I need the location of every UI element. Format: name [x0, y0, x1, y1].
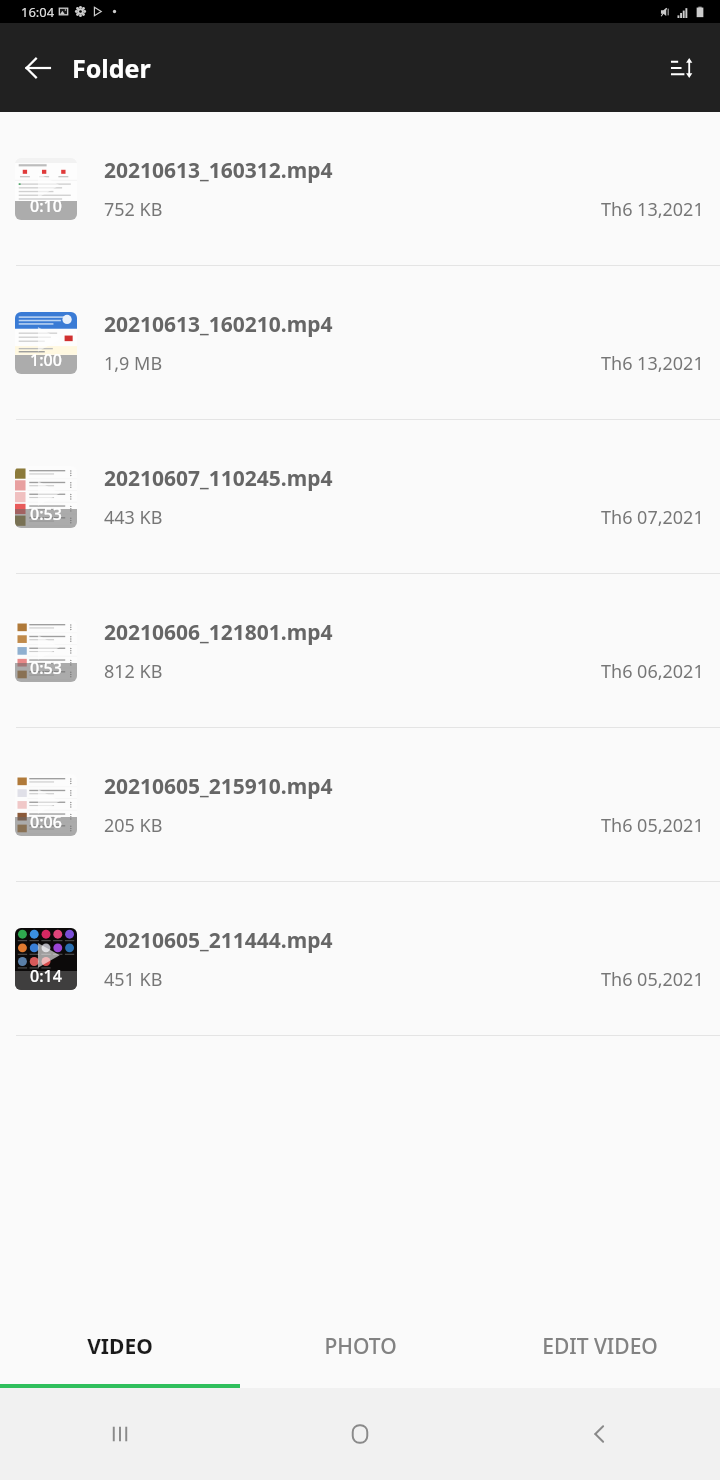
staticText: 0:53 — [30, 657, 62, 679]
button[interactable]: Recent apps — [0, 1388, 240, 1480]
staticText: 0:53 — [30, 503, 62, 525]
staticText: Folder — [72, 51, 151, 85]
button[interactable]: Sort — [658, 44, 706, 92]
button[interactable]: PHOTO — [240, 1308, 480, 1384]
button[interactable]: Home — [240, 1388, 480, 1480]
staticText: Th6 07,2021 — [601, 505, 704, 530]
staticText: 20210607_110245.mp4 — [104, 464, 333, 493]
staticText: 1,9 MB — [104, 351, 163, 376]
button[interactable]: 1:00 — [0, 266, 720, 419]
staticText: 20210613_160210.mp4 — [104, 310, 333, 339]
staticText: Th6 05,2021 — [601, 967, 704, 992]
staticText: 0:10 — [30, 195, 62, 217]
staticText: 20210605_211444.mp4 — [104, 926, 333, 955]
staticText: 0:14 — [30, 965, 62, 987]
staticText: 20210613_160312.mp4 — [104, 156, 333, 185]
staticText: Th6 13,2021 — [601, 197, 704, 222]
staticText: 1:00 — [30, 349, 62, 371]
button[interactable]: Back — [14, 44, 62, 92]
staticText: Th6 05,2021 — [601, 813, 704, 838]
staticText: Th6 13,2021 — [601, 351, 704, 376]
staticText: VIDEO — [87, 1332, 153, 1361]
button[interactable]: 0:14 — [0, 882, 720, 1035]
staticText: PHOTO — [324, 1332, 397, 1361]
button[interactable]: 0:53 — [0, 420, 720, 573]
staticText: 0:06 — [30, 811, 62, 833]
staticText: Th6 06,2021 — [601, 659, 704, 684]
button[interactable]: 0:06 — [0, 728, 720, 881]
button[interactable]: 0:53 — [0, 574, 720, 727]
button[interactable]: 0:10 — [0, 112, 720, 265]
staticText: 20210606_121801.mp4 — [104, 618, 333, 647]
staticText: 752 KB — [104, 197, 163, 222]
staticText: EDIT VIDEO — [542, 1332, 658, 1361]
staticText: 16:04 — [21, 3, 55, 21]
button[interactable]: VIDEO — [0, 1308, 240, 1384]
staticText: 812 KB — [104, 659, 163, 684]
button[interactable]: Back — [480, 1388, 720, 1480]
staticText: 451 KB — [104, 967, 163, 992]
staticText: 443 KB — [104, 505, 163, 530]
staticText: 205 KB — [104, 813, 163, 838]
button[interactable]: EDIT VIDEO — [480, 1308, 720, 1384]
staticText: 20210605_215910.mp4 — [104, 772, 333, 801]
